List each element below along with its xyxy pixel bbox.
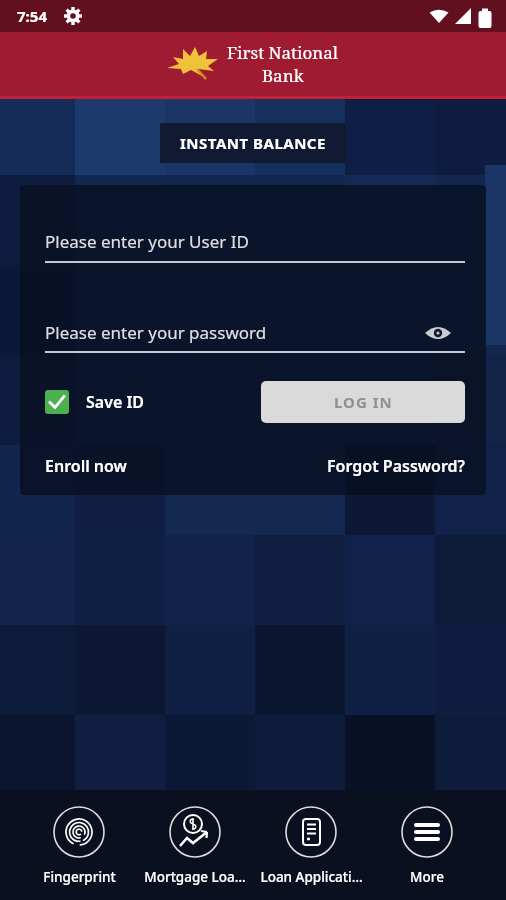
button[interactable]: Enroll now [45,455,127,477]
button[interactable]: Mortgage Loa… [137,790,253,886]
staticText: Mortgage Loa… [144,868,246,886]
staticText: INSTANT BALANCE [180,133,326,153]
button[interactable]: Loan Applicati… [253,790,369,886]
button[interactable] [424,323,452,343]
button[interactable]: Forgot Password? [327,455,465,477]
staticText: More [410,868,444,886]
staticText: 7:54 [17,6,47,26]
button[interactable]: Fingerprint [21,790,137,886]
button[interactable]: LOG IN [261,381,465,423]
button[interactable]: Save ID [45,390,145,414]
staticText: First National [227,41,339,64]
button[interactable]: INSTANT BALANCE [160,123,346,163]
staticText: Save ID [86,391,145,413]
staticText: Loan Applicati… [260,868,363,886]
button[interactable]: More [369,790,485,886]
staticText: Bank [262,64,304,87]
staticText: Please enter your password [45,321,267,344]
staticText: Fingerprint [43,868,116,886]
staticText: LOG IN [334,392,393,412]
staticText: Please enter your User ID [45,230,249,253]
